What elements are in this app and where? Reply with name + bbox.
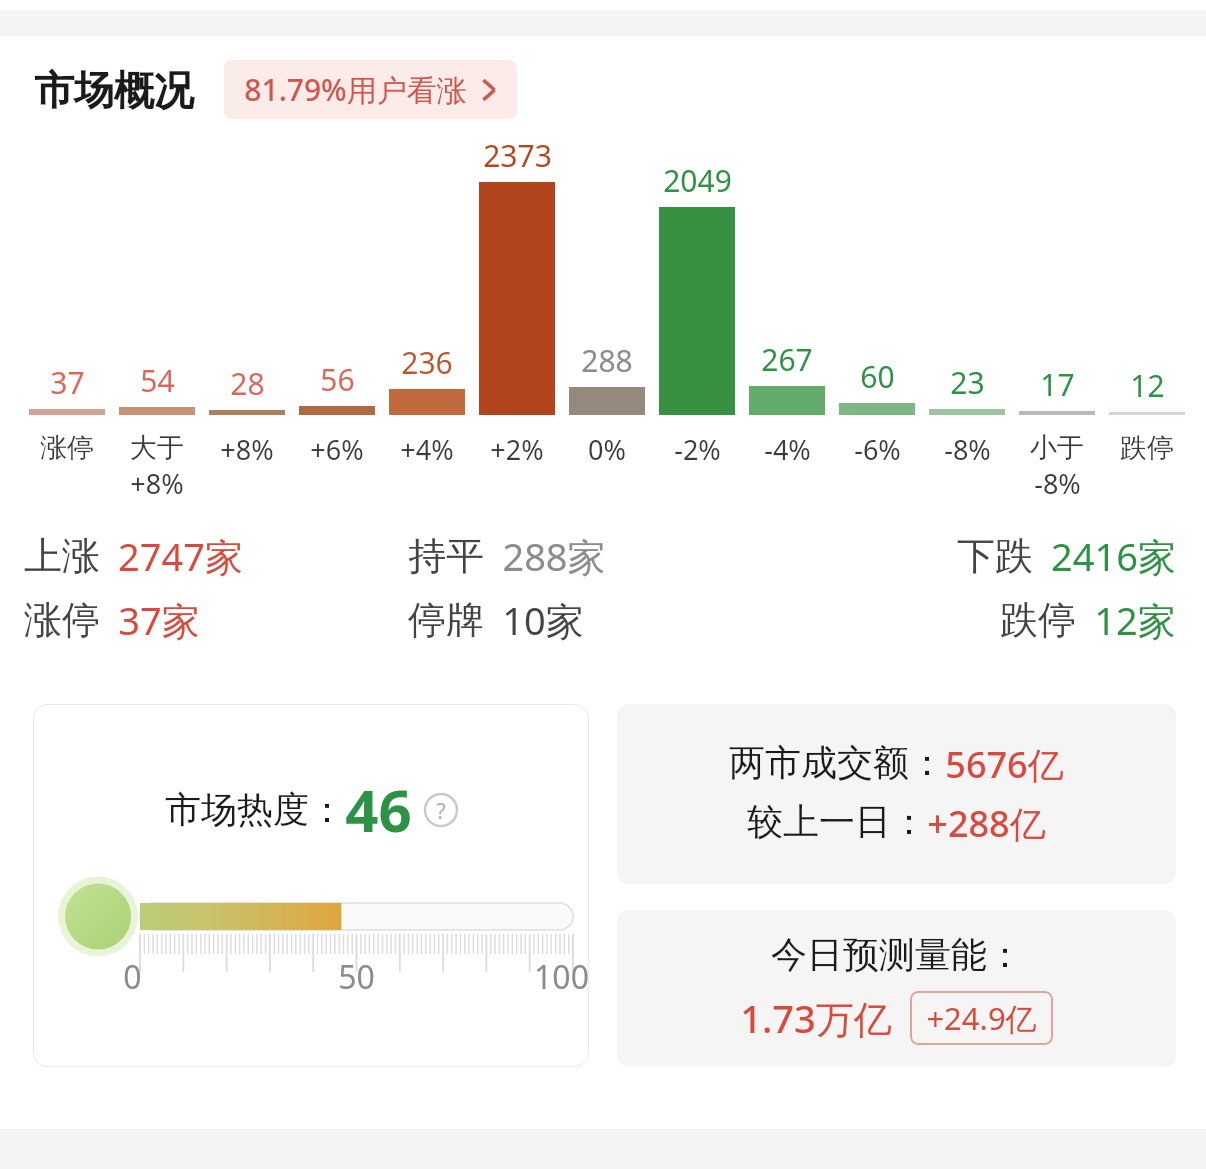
staticText: 停牌 bbox=[408, 596, 484, 644]
staticText: 涨停 bbox=[24, 596, 100, 644]
staticText: 上涨 bbox=[24, 532, 100, 580]
staticText: 288家 bbox=[502, 530, 606, 582]
staticText: 下跌 bbox=[957, 532, 1033, 580]
staticText: 50 bbox=[338, 955, 375, 999]
staticText: 2049 bbox=[663, 160, 732, 201]
staticText: +6% bbox=[310, 431, 364, 468]
staticText: 54 bbox=[140, 360, 175, 401]
staticText: -8% bbox=[944, 431, 991, 468]
staticText: 0% bbox=[588, 431, 626, 468]
staticText: 288 bbox=[581, 340, 633, 381]
staticText: 0 bbox=[123, 955, 142, 999]
staticText: -6% bbox=[854, 431, 901, 468]
staticText: -8% bbox=[1034, 465, 1081, 502]
staticText: 今日预测量能： bbox=[771, 932, 1023, 977]
staticText: 17 bbox=[1040, 364, 1075, 405]
staticText: +2% bbox=[490, 431, 544, 468]
button[interactable]: 帮助 bbox=[424, 793, 458, 827]
staticText: 1.73万亿 bbox=[740, 992, 892, 1044]
staticText: 涨停 bbox=[40, 431, 94, 465]
staticText: 市场热度： bbox=[165, 787, 345, 832]
staticText: 100 bbox=[534, 955, 589, 999]
staticText: 大于 bbox=[130, 431, 184, 465]
staticText: +8% bbox=[130, 465, 184, 502]
staticText: +4% bbox=[400, 431, 454, 468]
staticText: 持平 bbox=[408, 532, 484, 580]
staticText: -2% bbox=[674, 431, 721, 468]
button[interactable]: 今日预测量能： bbox=[617, 910, 1176, 1067]
staticText: 12家 bbox=[1094, 594, 1176, 646]
staticText: ? bbox=[436, 795, 446, 825]
staticText: +24.9亿 bbox=[926, 997, 1037, 1039]
staticText: 2373 bbox=[483, 135, 552, 176]
staticText: 46 bbox=[345, 770, 412, 849]
staticText: 2747家 bbox=[118, 530, 243, 582]
staticText: 81.79%用户看涨 bbox=[244, 69, 467, 110]
button[interactable]: 81.79%用户看涨 bbox=[224, 60, 517, 119]
staticText: 10家 bbox=[502, 594, 584, 646]
staticText: 较上一日： bbox=[747, 799, 927, 844]
staticText: 37 bbox=[50, 362, 85, 403]
staticText: 37家 bbox=[118, 594, 200, 646]
button[interactable]: 市场热度： bbox=[33, 704, 589, 1067]
staticText: 跌停 bbox=[1120, 431, 1174, 465]
staticText: +8% bbox=[220, 431, 274, 468]
staticText: 跌停 bbox=[1000, 596, 1076, 644]
staticText: 267 bbox=[761, 339, 813, 380]
staticText: 56 bbox=[320, 359, 355, 400]
staticText: -4% bbox=[764, 431, 811, 468]
staticText: 2416家 bbox=[1051, 530, 1176, 582]
staticText: +288亿 bbox=[927, 799, 1046, 848]
staticText: 236 bbox=[401, 342, 453, 383]
staticText: 5676亿 bbox=[945, 740, 1064, 789]
button[interactable]: 两市成交额： bbox=[617, 704, 1176, 884]
staticText: 12 bbox=[1130, 365, 1165, 406]
staticText: 60 bbox=[860, 356, 895, 397]
staticText: 28 bbox=[230, 363, 265, 404]
staticText: 23 bbox=[950, 362, 985, 403]
staticText: 市场概况 bbox=[34, 65, 194, 115]
staticText: 两市成交额： bbox=[729, 740, 945, 785]
staticText: 小于 bbox=[1030, 431, 1084, 465]
